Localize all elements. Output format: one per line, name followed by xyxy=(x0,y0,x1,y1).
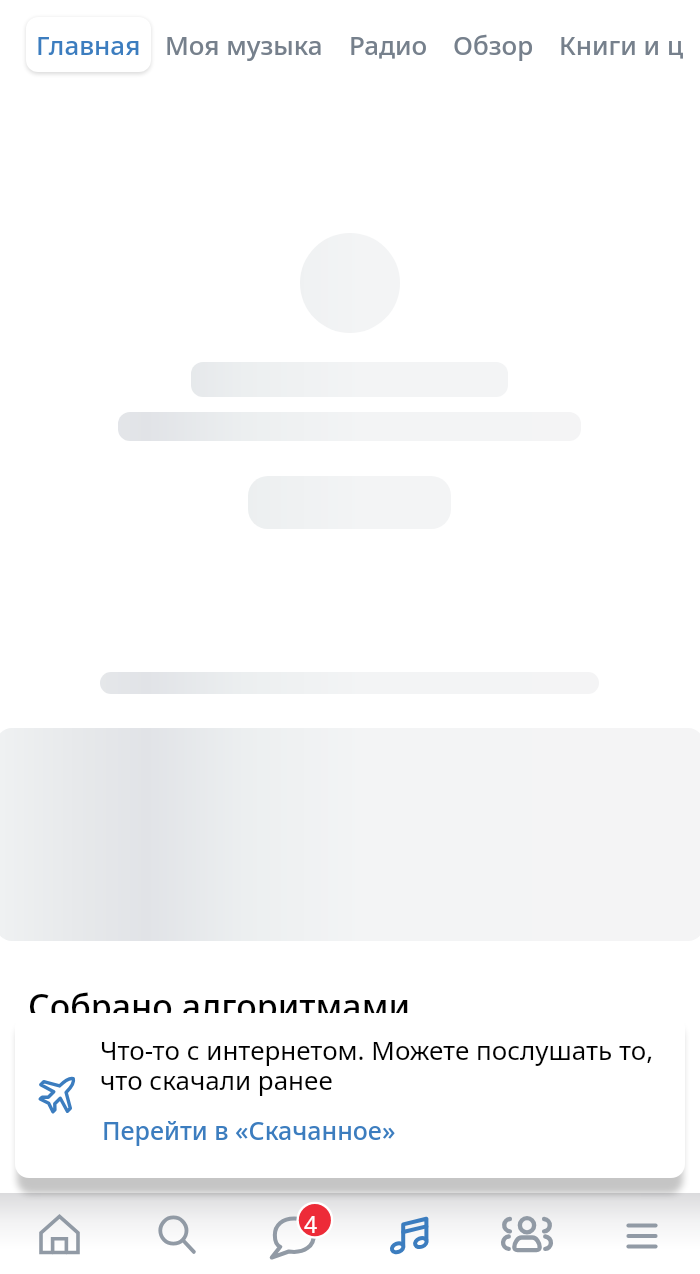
staticText: 4 xyxy=(304,1208,318,1239)
staticText: Собрано алгоритмами xyxy=(28,983,411,1029)
button[interactable]: Главная xyxy=(26,17,151,72)
button[interactable]: Menu xyxy=(583,1193,700,1274)
button[interactable]: Music xyxy=(349,1193,466,1274)
staticText: Что-то с интернетом. Можете послушать то… xyxy=(100,1032,654,1098)
other: Airplane mode xyxy=(40,1072,80,1112)
staticText: Перейти в «Скачанное» xyxy=(102,1113,396,1147)
staticText: Радио xyxy=(349,27,428,62)
button[interactable]: Радио xyxy=(349,17,428,72)
staticText: Моя музыка xyxy=(165,27,323,62)
staticText: Главная xyxy=(36,27,141,62)
staticText: Книги и ц xyxy=(559,27,684,62)
button[interactable]: Friends xyxy=(466,1193,583,1274)
button[interactable]: Search xyxy=(116,1193,232,1274)
button[interactable]: Перейти в «Скачанное» xyxy=(102,1113,396,1147)
button[interactable]: Messages, 4 unread xyxy=(232,1193,349,1274)
button[interactable]: Моя музыка xyxy=(165,17,323,72)
button[interactable]: Книги и ц xyxy=(559,17,684,72)
button[interactable]: Airplane mode xyxy=(15,1013,685,1178)
button[interactable]: Home xyxy=(0,1193,116,1274)
staticText: Обзор xyxy=(453,27,534,62)
button[interactable]: Обзор xyxy=(453,17,534,72)
